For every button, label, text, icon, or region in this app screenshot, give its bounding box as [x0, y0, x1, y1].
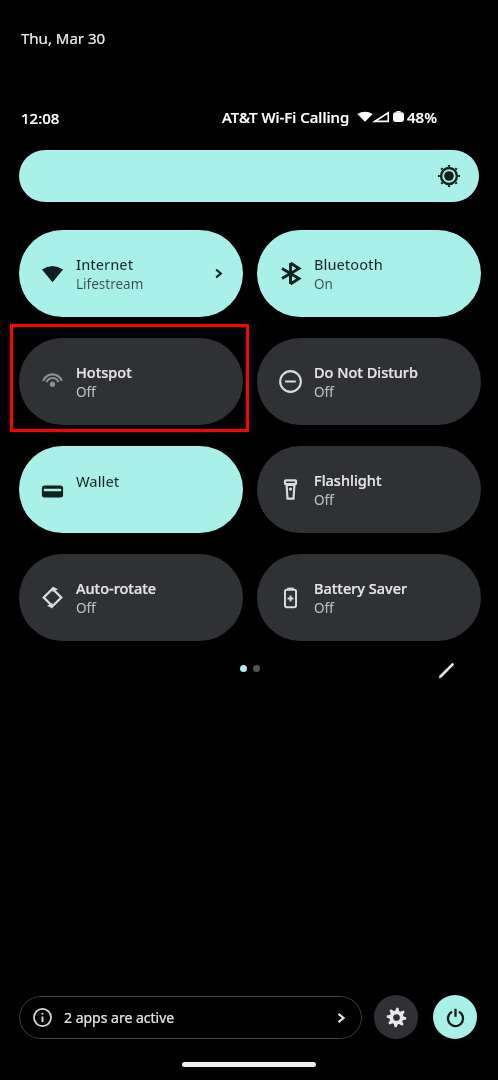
button[interactable]: Settings — [374, 995, 418, 1039]
button[interactable]: Do Not Disturb — [257, 338, 481, 425]
staticText: Internet — [76, 254, 134, 274]
button[interactable]: Power — [433, 995, 477, 1039]
staticText: Off — [76, 383, 96, 401]
staticText: 12:08 — [21, 108, 60, 128]
staticText: On — [314, 275, 333, 293]
staticText: Do Not Disturb — [314, 362, 418, 382]
button[interactable]: 2 apps are active — [19, 996, 362, 1039]
staticText: Battery Saver — [314, 578, 408, 598]
staticText: Auto-rotate — [76, 578, 157, 598]
staticText: Bluetooth — [314, 254, 383, 274]
button[interactable]: Auto-rotate — [19, 554, 243, 641]
button[interactable]: Hotspot — [19, 338, 243, 425]
staticText: Hotspot — [76, 362, 132, 382]
button[interactable]: Bluetooth — [257, 230, 481, 317]
staticText: Flashlight — [314, 470, 382, 490]
staticText: Off — [76, 599, 96, 617]
button[interactable]: Flashlight — [257, 446, 481, 533]
staticText: Lifestream — [76, 275, 144, 293]
staticText: Off — [314, 599, 334, 617]
button[interactable]: Wallet — [19, 446, 243, 533]
staticText: AT&T Wi-Fi Calling — [222, 107, 350, 127]
button[interactable]: Internet — [19, 230, 243, 317]
staticText: Off — [314, 491, 334, 509]
staticText: Thu, Mar 30 — [21, 28, 106, 48]
staticText: 48% — [407, 107, 437, 127]
staticText: Wallet — [76, 471, 120, 491]
button[interactable]: Edit tiles — [428, 652, 464, 688]
button[interactable]: Battery Saver — [257, 554, 481, 641]
button[interactable]: Brightness — [19, 150, 479, 202]
staticText: Off — [314, 383, 334, 401]
staticText: 2 apps are active — [64, 1008, 334, 1027]
